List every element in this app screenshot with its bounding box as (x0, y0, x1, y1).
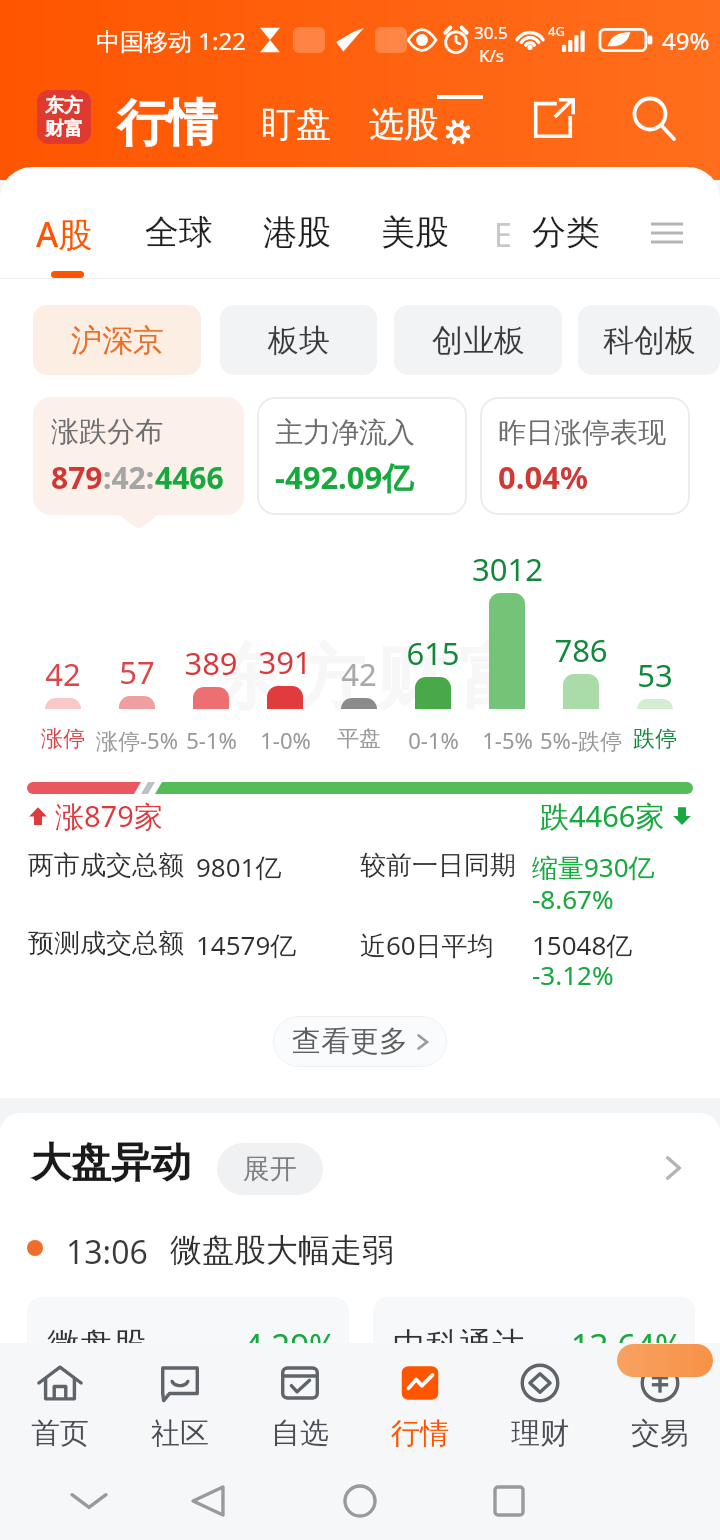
staticText: 平盘 (337, 725, 381, 753)
staticText: 13:06 (66, 1230, 148, 1274)
button[interactable]: More (650, 1145, 696, 1191)
staticText: 社区 (151, 1415, 209, 1452)
staticText: 主力净流入 (275, 415, 415, 450)
staticText: 0-1% (408, 725, 459, 755)
staticText: 沪深京 (71, 321, 164, 360)
button[interactable]: 自选 (240, 1343, 360, 1463)
staticText: 交易 (631, 1415, 689, 1452)
staticText: 行情 (117, 92, 217, 155)
button[interactable]: 行情 (360, 1343, 480, 1463)
button[interactable]: 中科通达 (373, 1297, 695, 1373)
staticText: 15048亿 (532, 927, 633, 963)
button[interactable]: Menu (644, 211, 690, 255)
staticText: 大盘异动 (31, 1137, 191, 1187)
staticText: 涨停-5% (96, 725, 178, 755)
button[interactable]: 分类 (532, 211, 600, 254)
button[interactable]: 主力净流入 (257, 397, 467, 515)
staticText: 理财 (511, 1415, 569, 1452)
staticText: 0.04% (498, 456, 588, 498)
staticText: 近60日平均 (360, 927, 494, 963)
staticText: 缩量930亿 (532, 849, 655, 885)
staticText: 中科通达 (393, 1324, 525, 1366)
button[interactable]: 东方 财富 (37, 90, 91, 144)
button[interactable]: 创业板 (394, 305, 562, 375)
staticText: 跌4466家 (540, 796, 665, 836)
staticText: 389 (184, 642, 238, 684)
staticText: 昨日涨停表现 (498, 415, 666, 450)
staticText: 跌停 (633, 725, 677, 753)
button[interactable]: 选股 (369, 102, 439, 146)
staticText: 53 (637, 654, 673, 696)
staticText: 预测成交总额 (28, 927, 184, 960)
button[interactable]: 科创板 (578, 305, 720, 375)
staticText: 较前一日同期 (360, 849, 516, 882)
staticText: 1-0% (260, 725, 311, 755)
button[interactable]: 美股 (381, 211, 449, 254)
staticText: 中国移动 1:22 (96, 24, 246, 57)
staticText: 微盘股大幅走弱 (170, 1230, 394, 1270)
staticText: A股 (36, 211, 93, 257)
staticText: 391 (258, 641, 312, 683)
staticText: :42: (103, 457, 155, 498)
button[interactable]: 首页 (0, 1343, 120, 1463)
button[interactable]: 微盘股 (27, 1297, 349, 1373)
staticText: 港股 (263, 211, 331, 254)
staticText: 展开 (243, 1152, 297, 1186)
staticText: 东方 财富 (45, 94, 83, 141)
staticText: -492.09亿 (275, 456, 414, 498)
staticText: 微盘股 (47, 1324, 146, 1366)
staticText: 4466 (155, 457, 224, 498)
staticText: 879 (51, 457, 103, 498)
button[interactable]: 全球 (145, 211, 213, 254)
staticText: 选股 (369, 102, 439, 146)
staticText: 涨停 (41, 725, 85, 753)
button[interactable]: 盯盘 (261, 102, 331, 146)
staticText: 板块 (268, 321, 330, 360)
staticText: 57 (119, 651, 155, 693)
staticText: 全球 (145, 211, 213, 254)
button[interactable]: 社区 (120, 1343, 240, 1463)
staticText: K/s (479, 44, 504, 67)
staticText: 行情 (391, 1415, 449, 1452)
staticText: 科创板 (603, 321, 696, 360)
button[interactable]: Search (625, 90, 683, 148)
staticText: 自选 (271, 1415, 329, 1452)
staticText: 查看更多 (292, 1023, 408, 1060)
staticText: 盯盘 (261, 102, 331, 146)
button[interactable]: 理财 (480, 1343, 600, 1463)
button[interactable]: 港股 (263, 211, 331, 254)
button[interactable]: 交易 (600, 1343, 720, 1463)
button[interactable]: 展开 (217, 1143, 323, 1195)
staticText: -4.29% (233, 1323, 337, 1368)
staticText: 分类 (532, 211, 600, 254)
staticText: 首页 (31, 1415, 89, 1452)
staticText: 东方财富 (206, 635, 534, 723)
staticText: 1-5% (482, 725, 533, 755)
staticText: 5-1% (186, 725, 237, 755)
staticText: 615 (406, 632, 460, 674)
staticText: 30.5 (474, 21, 508, 44)
staticText: E (494, 213, 512, 257)
staticText: 创业板 (432, 321, 525, 360)
staticText: 5%-跌停 (540, 725, 622, 755)
staticText: -13.64% (560, 1323, 683, 1368)
button[interactable]: 涨跌分布 (33, 397, 244, 515)
staticText: -8.67% (532, 881, 614, 916)
button[interactable]: Share (524, 90, 582, 148)
staticText: 49% (662, 24, 710, 57)
staticText: 9801亿 (196, 849, 282, 885)
button[interactable]: 沪深京 (33, 305, 201, 375)
staticText: 14579亿 (196, 927, 297, 963)
button[interactable]: 查看更多 (273, 1016, 447, 1067)
staticText: 美股 (381, 211, 449, 254)
button[interactable]: 昨日涨停表现 (480, 397, 690, 515)
button[interactable]: 板块 (220, 305, 377, 375)
staticText: 42 (45, 653, 81, 695)
staticText: 3012 (472, 548, 543, 590)
staticText: 涨跌分布 (51, 414, 163, 449)
button[interactable]: A股 (36, 211, 93, 257)
staticText: 涨879家 (55, 796, 163, 836)
staticText: 4G (548, 22, 565, 40)
staticText: 两市成交总额 (28, 849, 184, 882)
staticText: 42 (341, 653, 377, 695)
